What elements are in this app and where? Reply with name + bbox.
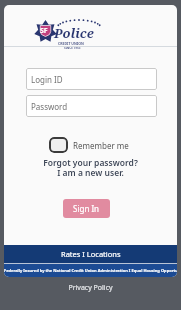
button[interactable]: I am a new user.: [4, 167, 177, 179]
button[interactable]: Privacy Policy: [0, 283, 181, 293]
staticText: Police: [54, 24, 94, 42]
staticText: Password: [31, 101, 68, 112]
button[interactable]: Remember me: [49, 137, 129, 153]
staticText: Remember me: [73, 140, 129, 151]
button[interactable]: Login ID: [26, 68, 157, 90]
staticText: Login ID: [31, 74, 63, 85]
staticText: Federally Insured by the National Credit…: [4, 268, 177, 273]
button[interactable]: Forgot your password?: [4, 157, 177, 169]
staticText: CREDIT UNION: [58, 41, 84, 46]
staticText: SF: [40, 26, 48, 36]
button[interactable]: Rates I Locations: [4, 245, 177, 263]
staticText: SINCE 1953: [64, 46, 81, 50]
button[interactable]: Password: [26, 95, 157, 117]
staticText: Sign In: [73, 203, 100, 214]
staticText: Rates I Locations: [61, 249, 121, 259]
button[interactable]: Sign In: [63, 199, 110, 218]
